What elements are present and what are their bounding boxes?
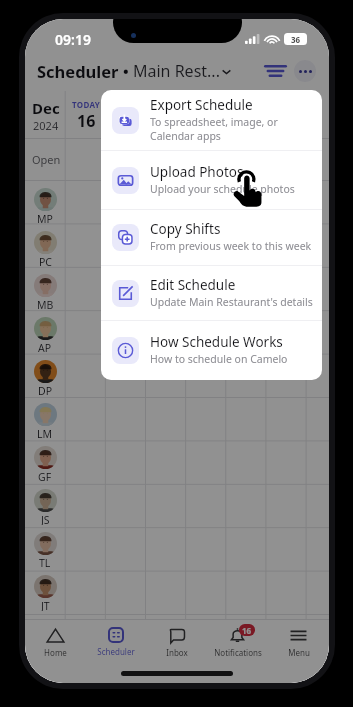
staticText: 09:19 <box>55 30 91 49</box>
button[interactable]: More options <box>294 60 316 82</box>
button[interactable]: Home <box>25 622 85 661</box>
staticText: 16 <box>242 625 252 636</box>
staticText: Copy Shifts <box>150 220 221 238</box>
staticText: To spreadsheet, image, or Calendar apps <box>150 115 278 143</box>
staticText: Scheduler <box>97 646 135 657</box>
staticText: Scheduler <box>37 60 119 82</box>
staticText: 2024 <box>33 118 59 133</box>
staticText: Edit Schedule <box>150 276 236 294</box>
staticText: How to schedule on Camelo <box>150 352 288 366</box>
staticText: JT <box>41 599 50 611</box>
button[interactable]: PC <box>25 224 65 267</box>
button[interactable]: Main Rest... <box>133 60 232 82</box>
staticText: Upload your schedule photos <box>150 182 295 196</box>
staticText: TL <box>39 556 51 568</box>
staticText: Dec <box>32 98 60 118</box>
button[interactable]: Menu <box>268 622 329 661</box>
staticText: 36 <box>291 34 301 45</box>
button[interactable]: DP <box>25 353 65 396</box>
staticText: LM <box>37 427 53 439</box>
button[interactable]: Export Schedule <box>101 90 322 150</box>
staticText: Menu <box>288 647 310 658</box>
staticText: DP <box>38 384 53 396</box>
button[interactable]: GF <box>25 439 65 482</box>
button[interactable]: How Schedule Works <box>101 321 322 380</box>
staticText: PC <box>39 255 52 267</box>
staticText: 16 <box>77 110 96 132</box>
button[interactable]: LM <box>25 396 65 439</box>
button[interactable]: TL <box>25 525 65 568</box>
staticText: AP <box>38 341 52 353</box>
button[interactable]: MP <box>25 181 65 224</box>
staticText: TODAY <box>72 99 101 110</box>
button[interactable]: MB <box>25 267 65 310</box>
staticText: How Schedule Works <box>150 333 283 351</box>
button[interactable]: AP <box>25 310 65 353</box>
staticText: Open <box>32 152 61 167</box>
button[interactable]: Edit Schedule <box>101 266 322 320</box>
staticText: GF <box>38 470 52 482</box>
button[interactable]: Upload Photos <box>101 151 322 209</box>
staticText: Home <box>44 647 67 658</box>
staticText: Inbox <box>166 647 188 658</box>
staticText: Main Rest... <box>133 60 220 82</box>
staticText: Export Schedule <box>150 96 253 114</box>
button[interactable]: Filter <box>262 58 288 84</box>
button[interactable]: Inbox <box>146 622 207 661</box>
staticText: From previous week to this week <box>150 239 312 253</box>
staticText: Notifications <box>214 647 262 658</box>
button[interactable]: Copy Shifts <box>101 210 322 265</box>
button[interactable]: JS <box>25 482 65 525</box>
staticText: Update Main Restaurant's details <box>150 295 313 309</box>
staticText: Upload Photos <box>150 163 244 181</box>
button[interactable]: JT <box>25 568 65 611</box>
staticText: MP <box>37 212 53 224</box>
staticText: MB <box>37 298 54 310</box>
button[interactable]: Scheduler <box>85 622 146 661</box>
staticText: JS <box>41 513 50 525</box>
button[interactable]: 16 <box>207 622 268 661</box>
staticText: • <box>119 61 133 81</box>
